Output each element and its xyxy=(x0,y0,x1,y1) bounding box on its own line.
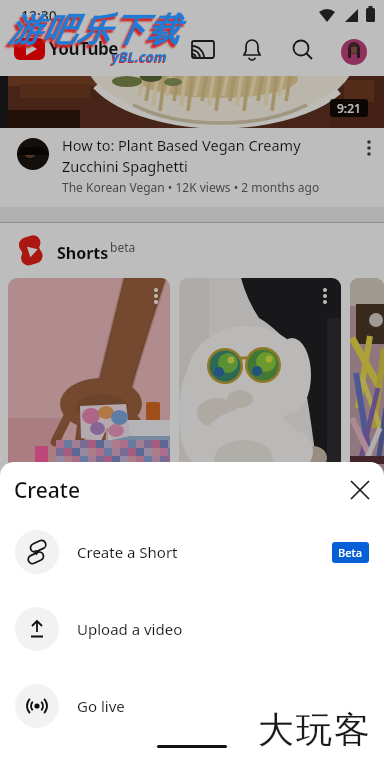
staticText: Upload a video xyxy=(77,619,183,639)
staticText: Create a Short xyxy=(77,542,178,562)
staticText: Create xyxy=(14,476,80,505)
button[interactable]: Upload a video xyxy=(0,597,384,661)
staticText: How to: Plant Based Vegan Creamy xyxy=(62,135,301,155)
staticText: Shorts xyxy=(57,242,109,264)
staticText: 12:30 xyxy=(21,6,57,25)
button[interactable]: Go live xyxy=(0,674,384,738)
staticText: YouTube xyxy=(49,37,118,60)
staticText: 大玩客 xyxy=(257,707,371,752)
staticText: yBL.com xyxy=(112,47,167,66)
staticText: 游吧乐下载 xyxy=(8,9,181,51)
button[interactable] xyxy=(179,278,341,578)
button[interactable]: Create a Short xyxy=(0,520,384,584)
staticText: 9:21 xyxy=(337,100,361,116)
staticText: Zucchini Spaghetti xyxy=(62,156,188,176)
staticText: Beta xyxy=(338,545,363,560)
staticText: Go live xyxy=(77,696,125,716)
button[interactable] xyxy=(340,470,380,510)
staticText: beta xyxy=(110,239,136,255)
staticText: The Korean Vegan • 12K views • 2 months … xyxy=(62,179,320,195)
button[interactable] xyxy=(8,278,170,578)
